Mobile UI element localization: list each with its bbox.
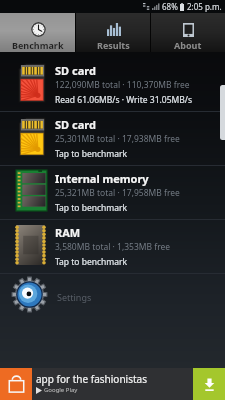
- button[interactable]: Results: [76, 13, 150, 52]
- button[interactable]: Benchmark: [0, 13, 75, 52]
- button[interactable]: Internal memory: [0, 166, 225, 220]
- staticText: Tap to benchmark: [55, 202, 128, 214]
- staticText: Internal memory: [55, 171, 149, 186]
- staticText: About: [174, 39, 202, 51]
- staticText: 2:05 p.m.: [187, 1, 222, 12]
- button[interactable]: Install: [193, 368, 225, 400]
- button[interactable]: Settings: [0, 274, 225, 320]
- staticText: Google Play: [44, 386, 78, 394]
- staticText: SD card: [55, 117, 96, 132]
- staticText: RAM: [55, 225, 81, 240]
- staticText: SD card: [55, 63, 96, 78]
- staticText: Read 61.06MB/s · Write 31.05MB/s: [55, 94, 192, 106]
- staticText: Tap to benchmark: [55, 256, 128, 268]
- button[interactable]: SD card: [0, 112, 225, 166]
- button[interactable]: RAM: [0, 220, 225, 274]
- staticText: 25,301MB total · 17,938MB free: [55, 133, 180, 145]
- button[interactable]: App icon: [0, 368, 32, 400]
- staticText: Benchmark: [12, 39, 64, 51]
- button[interactable]: About: [151, 13, 225, 52]
- staticText: Settings: [57, 291, 92, 303]
- staticText: 25,321MB total · 17,958MB free: [55, 187, 180, 199]
- button[interactable]: SD card: [0, 58, 225, 112]
- staticText: app for the fashionistas: [36, 372, 147, 386]
- staticText: Results: [97, 39, 130, 51]
- staticText: 68%: [162, 1, 178, 12]
- staticText: Tap to benchmark: [55, 148, 128, 160]
- staticText: 3,580MB total · 1,353MB free: [55, 241, 171, 253]
- staticText: 122,090MB total · 110,370MB free: [55, 79, 190, 91]
